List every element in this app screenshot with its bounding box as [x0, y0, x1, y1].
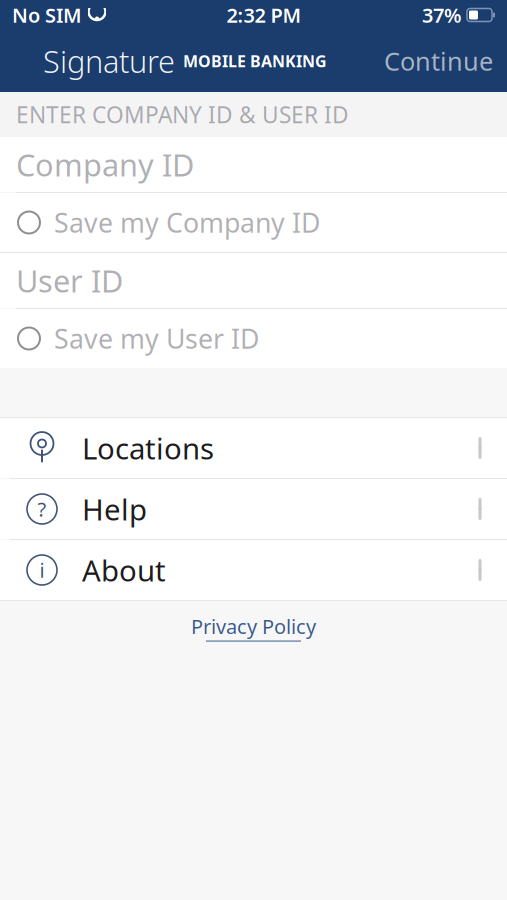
- staticText: Help: [82, 489, 147, 528]
- staticText: Save my Company ID: [54, 205, 320, 240]
- staticText: 2:32 PM: [226, 2, 301, 28]
- staticText: Save my User ID: [54, 321, 259, 356]
- staticText: MOBILE BANKING: [183, 50, 327, 72]
- staticText: ?: [37, 496, 46, 522]
- staticText: Locations: [82, 428, 214, 467]
- button[interactable]: Continue: [370, 39, 507, 83]
- staticText: No SIM: [12, 2, 82, 28]
- button[interactable]: Locations: [0, 418, 507, 478]
- staticText: Signature: [43, 41, 175, 81]
- staticText: i: [39, 557, 44, 583]
- staticText: 37%: [422, 2, 462, 28]
- staticText: User ID: [16, 260, 123, 301]
- button[interactable]: Save my Company ID: [0, 193, 507, 252]
- staticText: Company ID: [16, 144, 194, 185]
- staticText: ENTER COMPANY ID & USER ID: [16, 99, 349, 129]
- button[interactable]: User ID: [0, 253, 507, 308]
- staticText: About: [82, 550, 166, 589]
- button[interactable]: ?: [0, 479, 507, 539]
- staticText: Privacy Policy: [191, 613, 316, 640]
- staticText: Continue: [384, 44, 493, 78]
- button[interactable]: Save my User ID: [0, 309, 507, 368]
- button[interactable]: Company ID: [0, 137, 507, 192]
- button[interactable]: i: [0, 540, 507, 600]
- button[interactable]: Privacy Policy: [171, 601, 336, 654]
